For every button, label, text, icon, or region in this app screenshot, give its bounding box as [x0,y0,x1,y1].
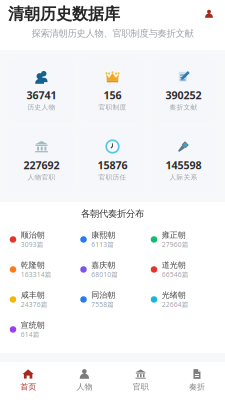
button[interactable]: 我的 [201,6,217,22]
staticText: 官职制度 [98,103,126,111]
staticText: 3093篇 [21,240,44,249]
button[interactable]: 390252 [150,57,216,123]
staticText: 咸丰朝 [21,290,45,300]
staticText: 同治朝 [91,290,115,300]
staticText: 6113篇 [91,240,114,249]
staticText: 探索清朝历史人物、官职制度与奏折文献 [31,28,193,39]
staticText: 人物官职 [27,173,55,181]
staticText: 顺治朝 [21,230,45,240]
button[interactable]: 145598 [150,127,216,193]
staticText: 24376篇 [21,300,48,309]
staticText: 27960篇 [162,240,189,249]
staticText: 156 [103,88,121,102]
button[interactable]: 首页 [0,362,56,400]
staticText: 各朝代奏折分布 [81,208,144,219]
staticText: 163314篇 [21,270,52,279]
staticText: 36741 [26,88,56,102]
staticText: 奏折 [189,382,205,392]
staticText: 乾隆朝 [21,260,45,270]
staticText: 22664篇 [162,300,189,309]
staticText: 68010篇 [91,270,118,279]
button[interactable]: 227692 [8,127,74,193]
staticText: 官职 [133,382,149,392]
staticText: 官职历任 [98,173,126,181]
staticText: 康熙朝 [91,230,115,240]
staticText: 嘉庆朝 [91,260,115,270]
staticText: 人物 [76,382,92,392]
staticText: 390252 [165,88,201,102]
button[interactable]: 36741 [8,57,74,123]
staticText: 历史人物 [27,103,55,111]
button[interactable]: 奏折 [169,362,225,400]
staticText: 7558篇 [91,300,114,309]
staticText: 227692 [23,158,59,172]
staticText: 道光朝 [162,260,186,270]
staticText: 光绪朝 [162,290,186,300]
button[interactable]: 156 [79,57,145,123]
staticText: 614篇 [21,330,40,339]
staticText: 66546篇 [162,270,189,279]
staticText: 奏折文献 [169,103,197,111]
button[interactable]: 15876 [79,127,145,193]
staticText: 人际关系 [169,173,197,181]
staticText: 15876 [97,158,127,172]
staticText: 145598 [165,158,201,172]
staticText: 清朝历史数据库 [8,4,120,24]
staticText: 宣统朝 [21,320,45,330]
staticText: 雍正朝 [162,230,186,240]
staticText: 首页 [20,382,36,392]
button[interactable]: 人物 [56,362,112,400]
button[interactable]: 官职 [112,362,169,400]
